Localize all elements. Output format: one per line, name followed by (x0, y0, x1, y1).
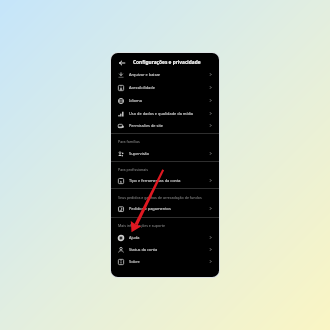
staticText: Idioma (129, 98, 208, 103)
staticText: Tipo e ferramentas da conta (129, 178, 208, 183)
button[interactable]: Voltar (117, 58, 126, 67)
staticText: Sobre (129, 259, 208, 264)
staticText: Ajuda (129, 235, 208, 240)
button[interactable]: Arquivar e baixar (111, 68, 219, 81)
button[interactable]: Idioma (111, 94, 219, 107)
staticText: Para profissionais (118, 167, 148, 172)
staticText: Acessibilidade (129, 85, 208, 90)
button[interactable]: Tipo e ferramentas da conta (111, 174, 219, 187)
button[interactable]: Sobre (111, 255, 219, 268)
staticText: Para famílias (118, 139, 140, 144)
staticText: Pedidos e pagamentos (129, 206, 208, 211)
button[interactable]: Status da conta (111, 243, 219, 256)
button[interactable]: Pedidos e pagamentos (111, 202, 219, 215)
staticText: Seus pedidos e ganhos de arrecadação de … (118, 195, 202, 200)
staticText: Configurações e privacidade (133, 59, 201, 66)
staticText: Status da conta (129, 247, 208, 252)
staticText: Supervisão (129, 151, 208, 156)
staticText: Permissões de site (129, 123, 208, 128)
button[interactable]: Acessibilidade (111, 81, 219, 94)
staticText: Uso de dados e qualidade da mídia (129, 111, 208, 116)
staticText: Arquivar e baixar (129, 72, 208, 77)
button[interactable]: Permissões de site (111, 119, 219, 132)
button[interactable]: Uso de dados e qualidade da mídia (111, 107, 219, 120)
staticText: Mais informações e suporte (118, 223, 165, 228)
button[interactable]: Supervisão (111, 147, 219, 160)
button[interactable]: Ajuda (111, 231, 219, 244)
